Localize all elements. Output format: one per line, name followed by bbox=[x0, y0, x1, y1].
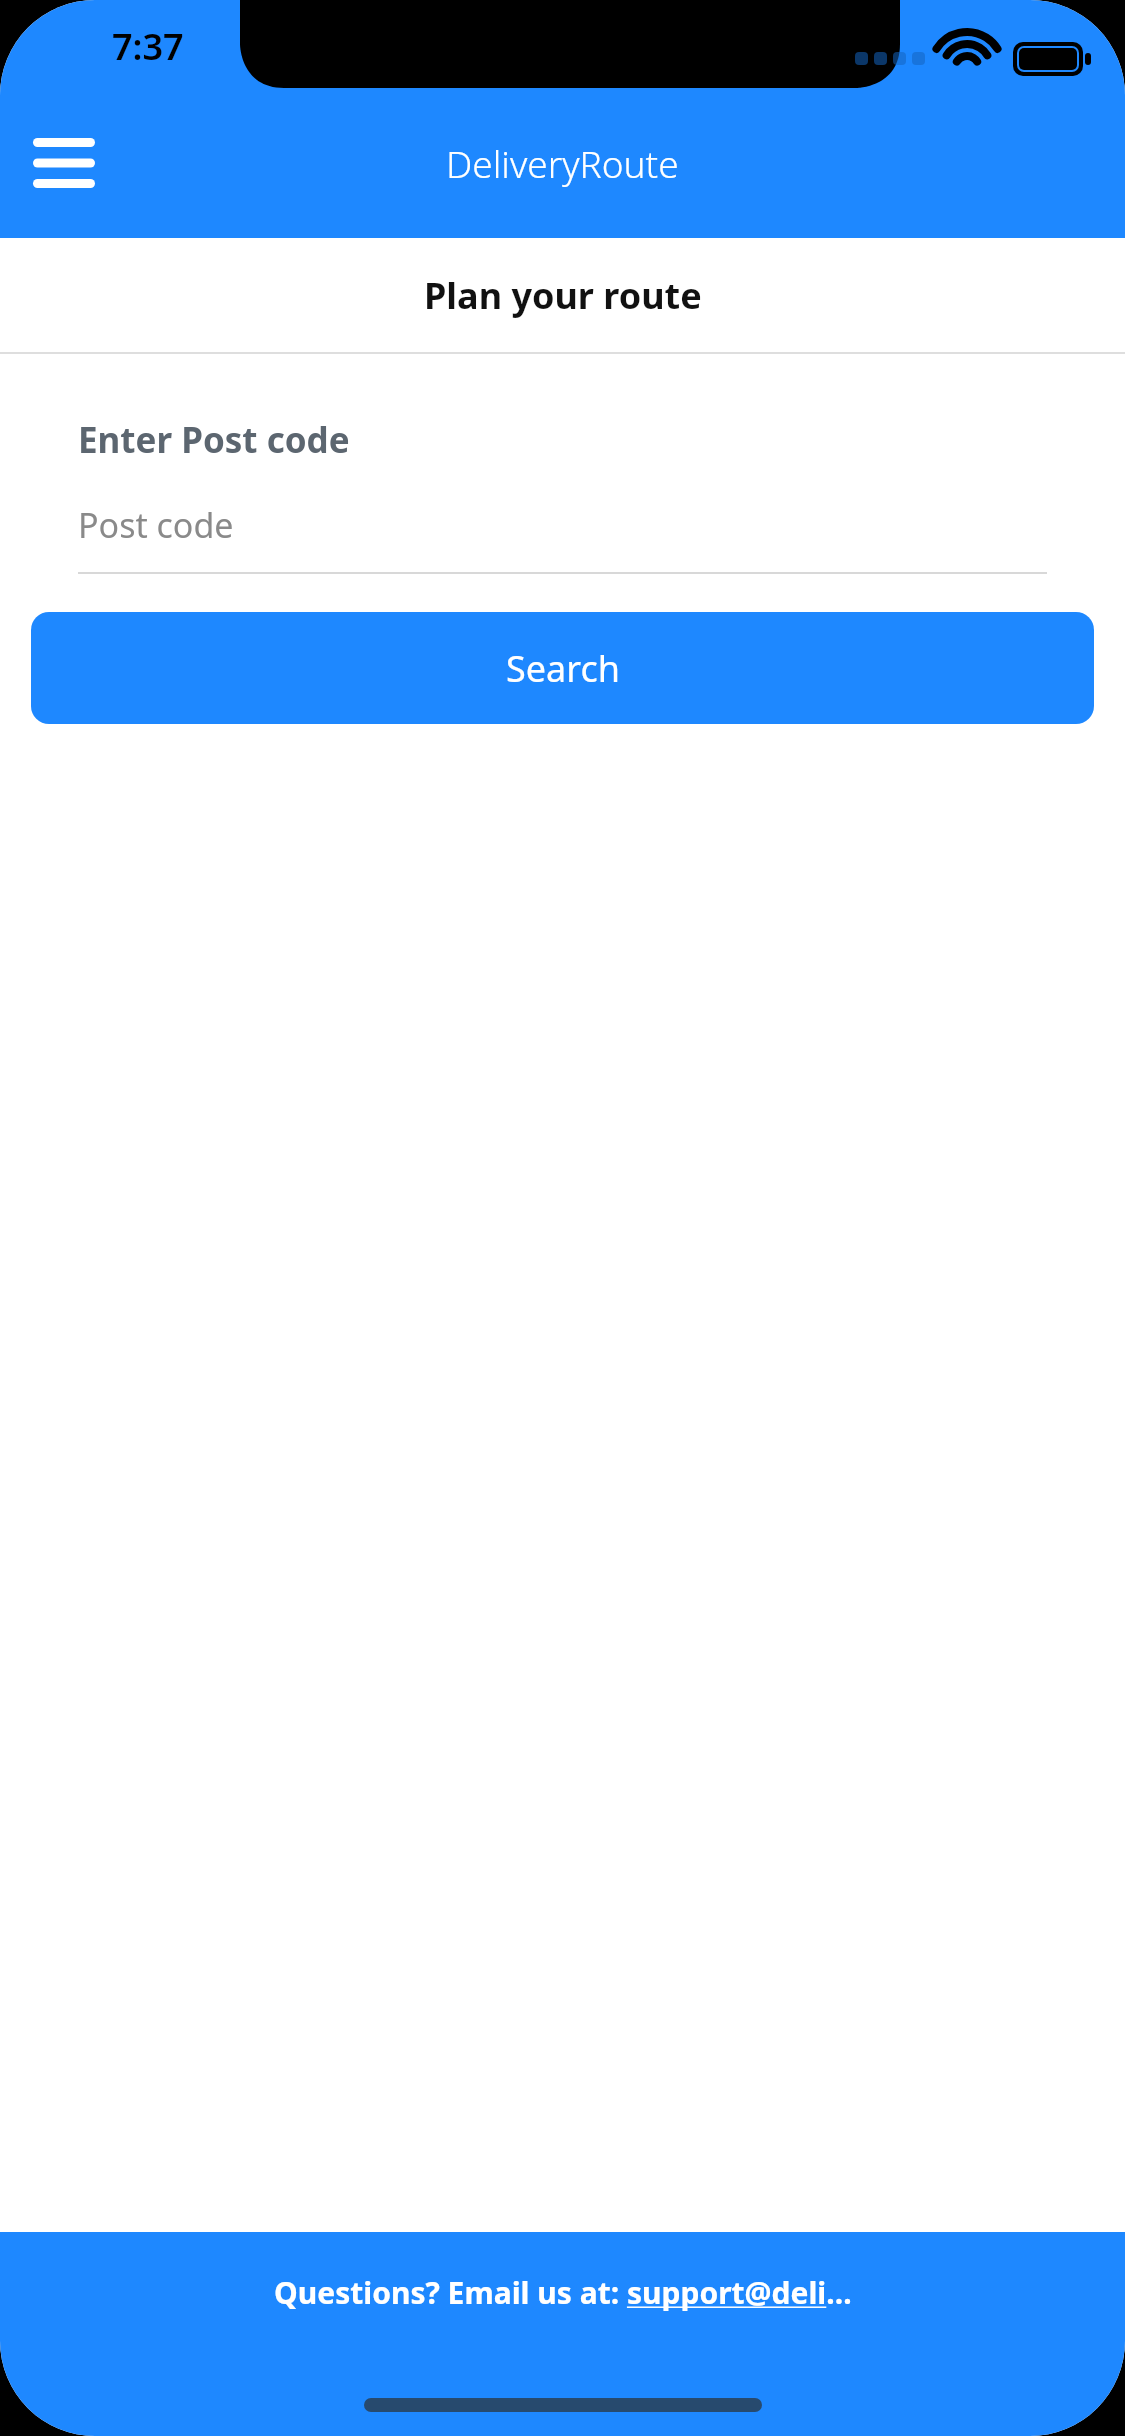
staticText: Questions? Email us at: support@deli... bbox=[274, 2272, 852, 2313]
staticText: Plan your route bbox=[424, 271, 702, 320]
button[interactable]: Post code bbox=[78, 502, 1047, 574]
staticText: DeliveryRoute bbox=[446, 138, 679, 188]
staticText: Post code bbox=[78, 502, 234, 548]
button[interactable]: Search bbox=[31, 612, 1094, 724]
staticText: Enter Post code bbox=[78, 416, 350, 464]
button[interactable]: Menu bbox=[16, 115, 112, 211]
staticText: Search bbox=[506, 644, 620, 693]
button[interactable]: Questions? Email us at: support@deli... bbox=[274, 2272, 852, 2313]
staticText: 7:37 bbox=[112, 22, 184, 71]
